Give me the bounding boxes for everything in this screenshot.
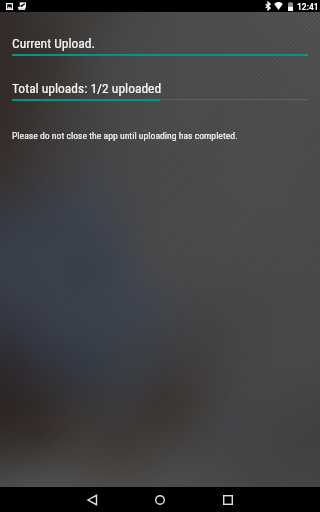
staticText: Please do not close the app until upload…: [12, 130, 238, 141]
button[interactable]: Home: [140, 487, 180, 512]
staticText: Current Upload.: [12, 35, 96, 51]
button[interactable]: Back: [72, 487, 112, 512]
staticText: 12:41: [297, 2, 319, 12]
button[interactable]: Recent apps: [208, 487, 248, 512]
staticText: Total uploads: 1/2 uploaded: [12, 80, 162, 96]
